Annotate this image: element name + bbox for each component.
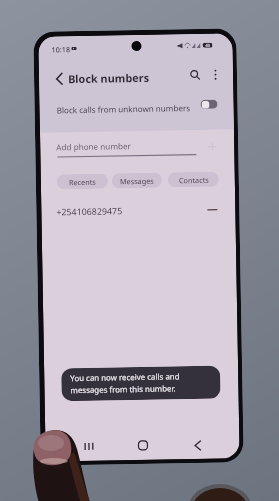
button[interactable]: Unblock number: [202, 199, 222, 220]
button[interactable]: You can now receive calls and: [61, 366, 221, 401]
button[interactable]: Recent apps: [78, 436, 99, 456]
staticText: Contacts: [179, 175, 209, 185]
button[interactable]: More options: [204, 63, 226, 86]
staticText: You can now receive calls and: [70, 371, 180, 384]
button[interactable]: Back: [187, 435, 208, 455]
staticText: Messages: [120, 176, 154, 186]
button[interactable]: Search: [184, 64, 206, 86]
staticText: 43: [205, 43, 210, 48]
staticText: Recents: [69, 177, 96, 187]
button[interactable]: Home: [132, 435, 153, 455]
staticText: 10:18: [51, 44, 71, 54]
button[interactable]: Back: [48, 67, 70, 90]
staticText: Block numbers: [68, 70, 149, 86]
button[interactable]: Messages: [112, 173, 162, 188]
button[interactable]: Contacts: [168, 172, 219, 187]
staticText: Add phone number: [56, 140, 131, 152]
button[interactable]: +254106829475: [41, 199, 236, 225]
staticText: messages from this number.: [70, 383, 177, 396]
button[interactable]: Recents: [57, 173, 108, 189]
staticText: +254106829475: [56, 205, 122, 218]
button[interactable]: Block calls from unknown numbers: [39, 93, 234, 125]
staticText: Block calls from unknown numbers: [56, 102, 191, 115]
